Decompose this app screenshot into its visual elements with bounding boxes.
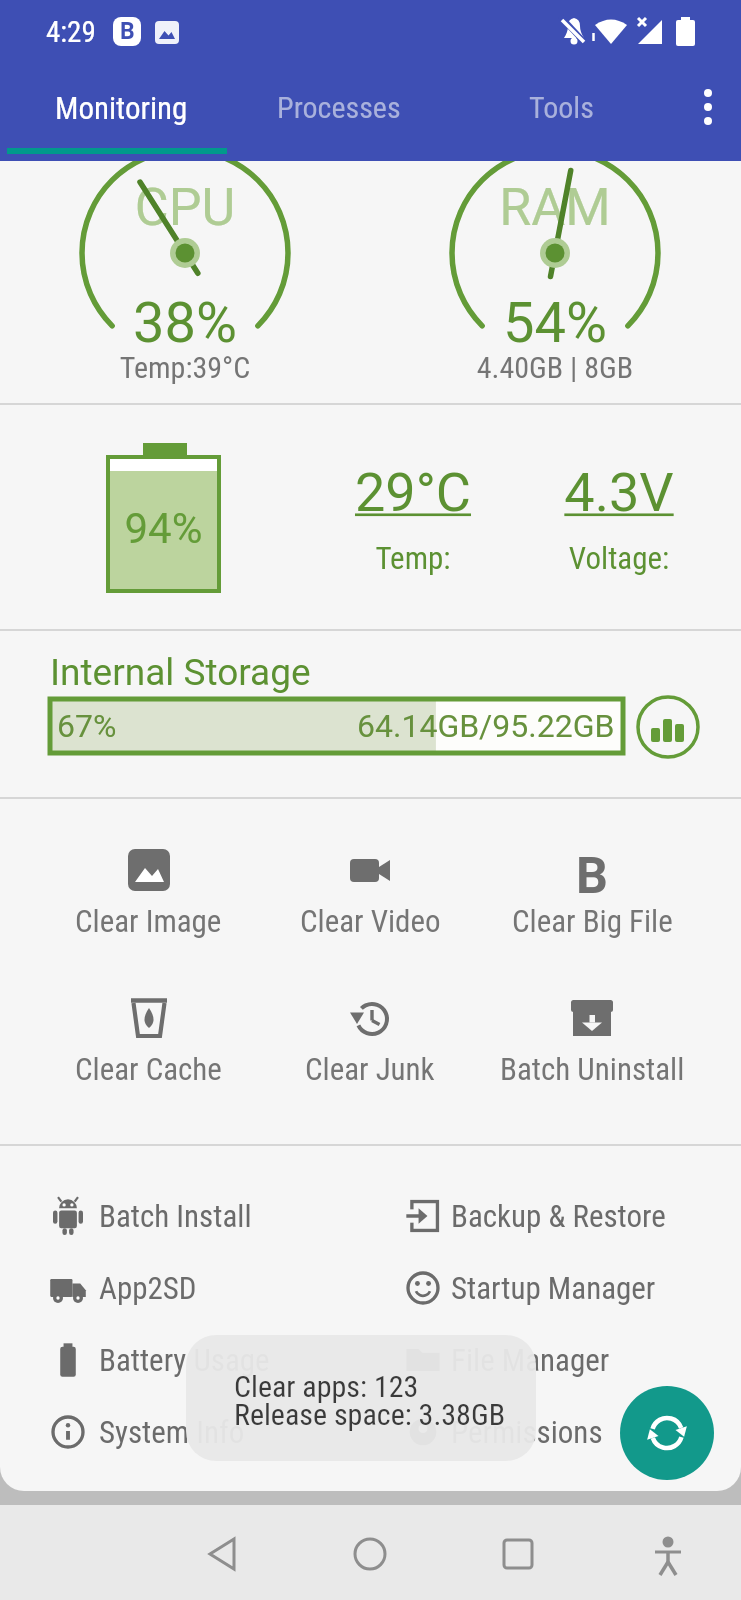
- staticText: 67%: [57, 707, 117, 745]
- button[interactable]: Clear Junk: [259, 995, 481, 1087]
- button[interactable]: Monitoring: [55, 90, 188, 126]
- staticText: 4.3V: [549, 461, 689, 524]
- staticText: Batch Uninstall: [500, 1051, 685, 1087]
- staticText: Temp:: [343, 540, 483, 576]
- staticText: Clear apps: 123: [234, 1369, 419, 1404]
- staticText: Voltage:: [549, 540, 689, 576]
- staticText: Clear Video: [300, 903, 441, 939]
- staticText: Clear Big File: [512, 903, 673, 939]
- button[interactable]: Tools: [529, 90, 594, 125]
- button[interactable]: Batch Uninstall: [481, 995, 703, 1087]
- button[interactable]: Battery Usage: [0, 1324, 370, 1396]
- button[interactable]: Backup & Restore: [370, 1180, 741, 1252]
- staticText: Temp:39°C: [65, 350, 305, 385]
- staticText: 38%: [65, 290, 305, 356]
- button[interactable]: Clear Image: [38, 847, 259, 939]
- button[interactable]: B: [481, 847, 703, 939]
- staticText: 54%: [435, 290, 675, 356]
- staticText: Clear Junk: [305, 1051, 435, 1087]
- staticText: 94%: [106, 504, 221, 553]
- button[interactable]: App2SD: [0, 1252, 370, 1324]
- staticText: B: [120, 18, 135, 45]
- button[interactable]: Startup Manager: [370, 1252, 741, 1324]
- button[interactable]: [620, 1386, 714, 1480]
- button[interactable]: File Manager: [370, 1324, 741, 1396]
- staticText: Release space: 3.38GB: [234, 1397, 506, 1432]
- staticText: 4.40GB | 8GB: [435, 350, 675, 385]
- staticText: Permissions: [451, 1414, 603, 1450]
- staticText: System Info: [99, 1414, 245, 1450]
- staticText: File Manager: [451, 1342, 610, 1378]
- button[interactable]: [636, 695, 700, 759]
- staticText: Internal Storage: [50, 651, 311, 694]
- button[interactable]: System Info: [0, 1396, 370, 1468]
- button[interactable]: [690, 80, 726, 136]
- staticText: 64.14GB/95.22GB: [357, 707, 615, 745]
- button[interactable]: Clear Cache: [38, 995, 259, 1087]
- staticText: 4:29: [46, 15, 96, 49]
- staticText: Batch Install: [99, 1198, 252, 1234]
- button[interactable]: Processes: [277, 90, 401, 125]
- staticText: Backup & Restore: [451, 1198, 666, 1234]
- staticText: CPU: [65, 177, 305, 238]
- staticText: App2SD: [99, 1270, 197, 1306]
- staticText: Battery Usage: [99, 1342, 270, 1378]
- staticText: 29°C: [343, 461, 483, 524]
- staticText: Startup Manager: [451, 1270, 656, 1306]
- staticText: B: [576, 847, 608, 893]
- staticText: RAM: [435, 177, 675, 238]
- staticText: Clear Cache: [75, 1051, 222, 1087]
- button[interactable]: Permissions: [370, 1396, 741, 1468]
- staticText: Clear Image: [75, 903, 222, 939]
- button[interactable]: Clear Video: [259, 847, 481, 939]
- button[interactable]: Batch Install: [0, 1180, 370, 1252]
